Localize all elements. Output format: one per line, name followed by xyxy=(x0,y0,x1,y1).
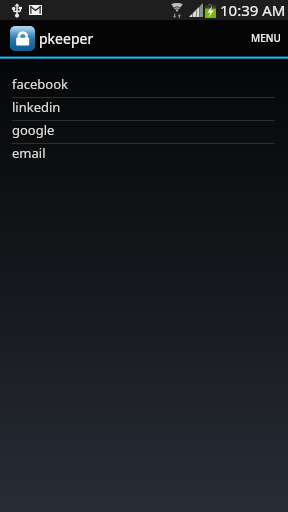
button[interactable]: pkeeper xyxy=(10,20,288,56)
staticText: 10:39 AM xyxy=(220,0,286,20)
staticText: pkeeper xyxy=(39,29,94,48)
other: Battery charging xyxy=(205,4,216,18)
button[interactable]: MENU xyxy=(244,20,288,56)
button[interactable]: email xyxy=(0,144,288,167)
staticText: facebook xyxy=(12,75,69,93)
staticText: email xyxy=(12,144,46,162)
button[interactable]: google xyxy=(0,121,288,144)
other: New mail xyxy=(29,5,42,15)
staticText: MENU xyxy=(251,31,281,45)
staticText: google xyxy=(12,121,55,139)
button[interactable]: linkedin xyxy=(0,98,288,121)
button[interactable]: facebook xyxy=(0,75,288,98)
other: USB connected xyxy=(12,3,22,18)
staticText: linkedin xyxy=(12,98,61,116)
